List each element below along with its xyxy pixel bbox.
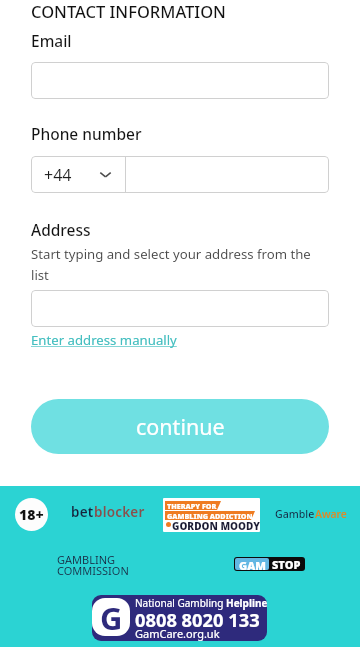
staticText: bet (71, 503, 94, 521)
staticText: THERAPY FOR (167, 501, 217, 510)
other: Select country code (99, 168, 112, 181)
staticText: Helpline (226, 596, 267, 610)
staticText: Email (31, 30, 72, 51)
staticText: Phone number (31, 123, 142, 144)
staticText: Start typing and select your address fro… (31, 245, 311, 284)
staticText: GAMBLING (57, 552, 116, 567)
button[interactable]: GAMSTOP (234, 557, 305, 571)
staticText: GamCare.org.uk (135, 626, 220, 641)
button[interactable]: G (92, 595, 267, 641)
staticText: STOP (272, 557, 301, 571)
staticText: 18+ (19, 505, 44, 524)
staticText: National Gambling (135, 596, 226, 610)
staticText: G (100, 598, 123, 635)
staticText: CONTACT INFORMATION (31, 0, 226, 22)
button[interactable]: Gordon Moody - therapy for gambling addi… (163, 498, 260, 532)
button[interactable] (126, 156, 329, 193)
button[interactable]: Gamble (275, 507, 347, 521)
staticText: Gamble (275, 507, 315, 521)
staticText: COMMISSION (57, 563, 129, 578)
button[interactable]: bet (71, 503, 145, 521)
staticText: GAM (239, 558, 266, 570)
button[interactable] (31, 290, 329, 327)
staticText: blocker (94, 503, 145, 521)
staticText: Address (31, 219, 91, 240)
button[interactable]: +44 (31, 156, 125, 193)
staticText: +44 (44, 164, 72, 186)
button[interactable]: Enter address manually (31, 331, 177, 349)
button[interactable]: Gambling Commission (57, 552, 127, 576)
staticText: GORDON MOODY (172, 519, 260, 532)
staticText: 0808 8020 133 (135, 607, 260, 632)
staticText: continue (136, 412, 225, 441)
staticText: GAMBLING ADDICTION (167, 511, 253, 520)
button[interactable] (31, 62, 329, 99)
button[interactable]: continue (31, 399, 329, 454)
staticText: Aware (315, 507, 347, 521)
button[interactable]: 18 plus only (15, 498, 48, 531)
